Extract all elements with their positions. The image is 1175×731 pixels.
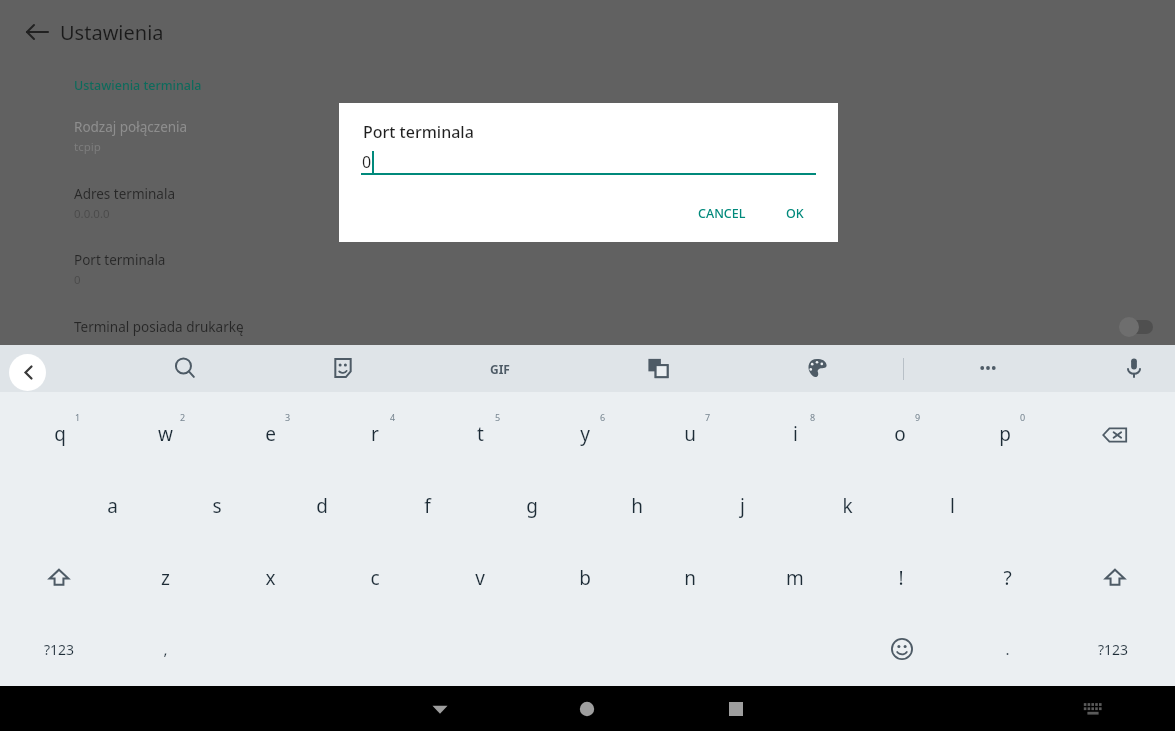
staticText: ? [1003,565,1012,591]
button[interactable]: p [953,401,1057,467]
staticText: y [580,421,590,447]
staticText: tcpip [74,139,101,155]
button[interactable]: Shift [1063,545,1167,611]
button[interactable]: e [218,401,322,467]
button[interactable]: Translate [638,348,678,388]
staticText: 0 [1020,411,1026,423]
button[interactable]: m [743,545,847,611]
button[interactable]: Back [410,686,470,731]
button[interactable]: Theme [797,348,837,388]
button[interactable]: y [533,401,637,467]
staticText: k [842,493,853,519]
staticText: 9 [915,411,921,423]
button[interactable]: d [270,473,374,539]
button[interactable]: i [743,401,847,467]
button[interactable]: o [848,401,952,467]
staticText: Ustawienia terminala [74,77,202,94]
button[interactable]: f [375,473,479,539]
button[interactable]: Port terminala [74,251,674,288]
button[interactable]: More options [968,348,1008,388]
staticText: c [370,565,380,591]
button[interactable]: Emoji [850,616,954,682]
staticText: Rodzaj połączenia [74,118,188,136]
staticText: ?123 [1098,640,1129,659]
button[interactable]: q [8,401,112,467]
staticText: s [212,493,222,519]
staticText: l [950,493,955,519]
staticText: h [631,493,643,519]
button[interactable]: v [428,545,532,611]
button[interactable]: ?123 [7,616,111,682]
button[interactable]: a [60,473,164,539]
staticText: u [684,421,696,447]
staticText: w [158,421,173,447]
button[interactable]: b [533,545,637,611]
button[interactable]: Close toolbar [9,354,46,391]
button[interactable]: Terminal posiada drukarkę [0,308,1175,345]
staticText: t [477,421,484,447]
button[interactable]: Rodzaj połączenia [74,118,674,155]
button[interactable]: Back [22,14,164,50]
staticText: ! [898,565,904,591]
staticText: , [163,639,168,659]
staticText: o [894,421,906,447]
button[interactable]: w [113,401,217,467]
button[interactable]: Backspace [1063,402,1167,468]
staticText: m [786,565,804,591]
button[interactable]: t [428,401,532,467]
staticText: i [793,421,798,447]
staticText: a [107,493,118,519]
staticText: OK [786,205,804,222]
button[interactable]: n [638,545,742,611]
button[interactable]: Switch keyboard [1069,686,1117,731]
staticText: g [526,493,538,519]
button[interactable]: OK [776,199,814,228]
button[interactable]: CANCEL [688,199,756,228]
staticText: x [265,565,276,591]
staticText: ?123 [44,640,75,659]
button[interactable]: GIF [478,357,522,381]
button[interactable]: , [113,616,217,682]
staticText: Port terminala [363,121,474,143]
button[interactable]: x [218,545,322,611]
staticText: 0 [74,272,81,288]
staticText: Terminal posiada drukarkę [74,318,244,336]
button[interactable]: Home [557,686,617,731]
staticText: e [265,421,276,447]
button[interactable]: Search [165,348,205,388]
button[interactable]: ?123 [1061,616,1165,682]
staticText: 3 [285,411,291,423]
button[interactable]: r [323,401,427,467]
button[interactable]: Shift [7,545,111,611]
staticText: 4 [390,411,396,423]
button[interactable]: Voice input [1114,348,1154,388]
staticText: 1 [75,411,81,423]
button[interactable]: z [113,545,217,611]
staticText: j [740,493,745,519]
button[interactable]: h [585,473,689,539]
button[interactable]: Recent apps [706,686,766,731]
button[interactable]: s [165,473,269,539]
staticText: Ustawienia [60,19,164,46]
staticText: v [475,565,485,591]
button[interactable]: ? [955,545,1059,611]
staticText: 6 [600,411,606,423]
staticText: CANCEL [698,205,746,222]
button[interactable]: l [900,473,1004,539]
button[interactable]: Stickers [323,348,363,388]
button[interactable]: ! [849,545,953,611]
button[interactable]: u [638,401,742,467]
button[interactable]: c [323,545,427,611]
button[interactable]: j [690,473,794,539]
staticText: n [684,565,696,591]
button[interactable]: g [480,473,584,539]
staticText: 5 [495,411,501,423]
button[interactable]: Adres terminala [74,185,674,222]
staticText: . [1005,639,1010,659]
staticText: GIF [490,361,510,377]
staticText: q [54,421,66,447]
button[interactable]: k [795,473,899,539]
staticText: Port terminala [74,251,166,269]
staticText: p [999,421,1011,447]
